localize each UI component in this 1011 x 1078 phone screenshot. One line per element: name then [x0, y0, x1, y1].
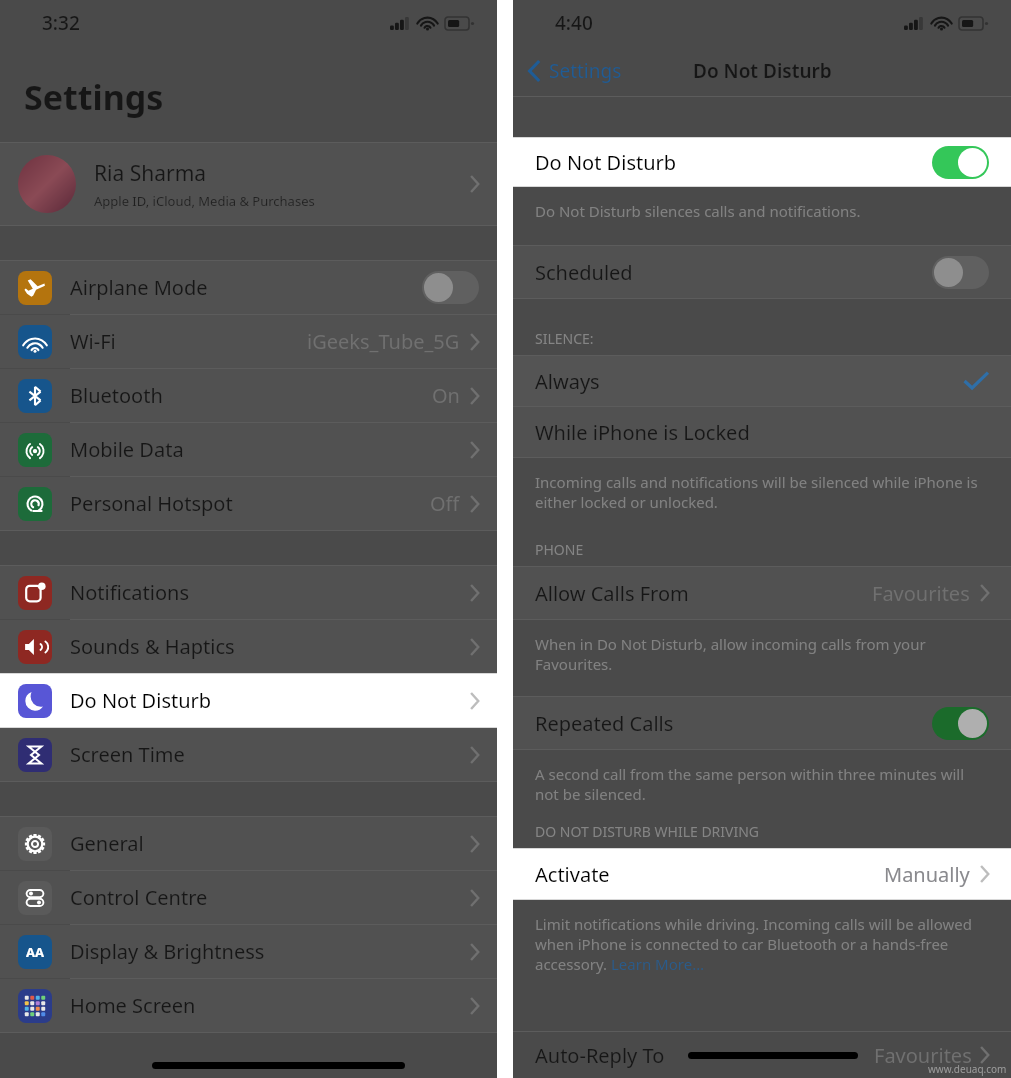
staticText: Scheduled [535, 259, 633, 286]
staticText: Activate [535, 861, 610, 888]
staticText: Notifications [70, 579, 189, 606]
staticText: Bluetooth [70, 382, 163, 409]
staticText: Display & Brightness [70, 938, 265, 965]
button[interactable]: Wi-Fi [0, 315, 497, 368]
staticText: Favourites [872, 580, 970, 607]
staticText: General [70, 830, 144, 857]
staticText: Manually [884, 861, 970, 888]
button[interactable]: Auto-Reply To [513, 1032, 1011, 1078]
button[interactable]: Toggle on [932, 707, 989, 740]
staticText: Incoming calls and notifications will be… [535, 472, 981, 512]
button[interactable]: Sounds & Haptics [0, 620, 497, 673]
button[interactable]: Allow Calls From [513, 567, 1011, 619]
button[interactable]: Do Not Disturb [0, 674, 497, 727]
staticText: Settings [24, 74, 164, 120]
staticText: Always [535, 368, 600, 395]
button[interactable]: Do Not Disturb [513, 138, 1011, 186]
staticText: A second call from the same person withi… [535, 764, 981, 804]
staticText: Allow Calls From [535, 580, 689, 607]
button[interactable]: Scheduled [513, 246, 1011, 298]
staticText: www.deuaq.com [928, 1062, 1007, 1076]
button[interactable]: Toggle on [932, 146, 989, 179]
staticText: Do Not Disturb [535, 149, 677, 176]
button[interactable]: Repeated Calls [513, 697, 1011, 749]
staticText: Screen Time [70, 741, 185, 768]
staticText: When in Do Not Disturb, allow incoming c… [535, 634, 981, 674]
button[interactable]: AA [0, 925, 497, 978]
staticText: Wi-Fi [70, 328, 116, 355]
staticText: Do Not Disturb [693, 58, 832, 84]
staticText: Repeated Calls [535, 710, 674, 737]
button[interactable]: Settings [513, 52, 634, 90]
staticText: accessory. [535, 954, 611, 974]
button[interactable]: General [0, 817, 497, 870]
staticText: 4:40 [555, 10, 593, 36]
staticText: PHONE [535, 540, 584, 559]
button[interactable]: Always [513, 356, 1011, 406]
button[interactable]: Ria Sharma [0, 143, 497, 225]
button[interactable]: While iPhone is Locked [513, 407, 1011, 457]
button[interactable]: Personal Hotspot [0, 477, 497, 530]
staticText: when iPhone is connected to car Bluetoot… [535, 934, 949, 954]
button[interactable]: Airplane Mode [0, 261, 497, 314]
staticText: AA [26, 943, 44, 961]
staticText: While iPhone is Locked [535, 419, 750, 446]
button[interactable]: Mobile Data [0, 423, 497, 476]
staticText: iGeeks_Tube_5G [307, 328, 460, 355]
button[interactable]: Toggle off [932, 256, 989, 289]
staticText: Airplane Mode [70, 274, 208, 301]
staticText: Auto-Reply To [535, 1042, 665, 1069]
button[interactable]: Bluetooth [0, 369, 497, 422]
button[interactable]: Toggle off [422, 271, 479, 304]
staticText: Favourites [874, 1042, 972, 1069]
button[interactable]: Learn More… [611, 954, 705, 974]
staticText: Apple ID, iCloud, Media & Purchases [94, 192, 315, 210]
button[interactable]: Activate [513, 849, 1011, 899]
staticText: Control Centre [70, 884, 208, 911]
staticText: Mobile Data [70, 436, 184, 463]
staticText: Personal Hotspot [70, 490, 233, 517]
staticText: Off [430, 490, 460, 517]
staticText: Do Not Disturb silences calls and notifi… [535, 201, 861, 221]
staticText: 3:32 [42, 10, 80, 36]
button[interactable]: Notifications [0, 566, 497, 619]
button[interactable]: Home Screen [0, 979, 497, 1032]
staticText: Limit notifications while driving. Incom… [535, 914, 972, 934]
button[interactable]: Screen Time [0, 728, 497, 781]
staticText: SILENCE: [535, 329, 594, 348]
staticText: Home Screen [70, 992, 196, 1019]
staticText: Do Not Disturb [70, 687, 212, 714]
staticText: On [432, 382, 460, 409]
staticText: Sounds & Haptics [70, 633, 235, 660]
staticText: DO NOT DISTURB WHILE DRIVING [535, 822, 760, 841]
button[interactable]: Control Centre [0, 871, 497, 924]
staticText: Settings [549, 58, 622, 84]
staticText: Ria Sharma [94, 159, 207, 188]
